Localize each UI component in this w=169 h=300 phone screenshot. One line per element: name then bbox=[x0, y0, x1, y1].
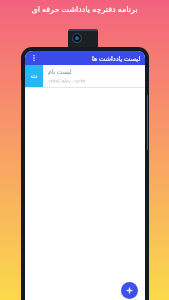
button[interactable]: Add note bbox=[121, 282, 138, 299]
staticText: ۱۳۹۹/۰۷/۲۲ - ۱۲:۳۴ bbox=[48, 78, 86, 84]
staticText: برنامه دفترچه یادداشت حرفه ای bbox=[31, 3, 138, 14]
staticText: ت bbox=[31, 72, 38, 80]
staticText: لیست یادداشت ها bbox=[92, 54, 141, 63]
staticText: لیست نام bbox=[48, 68, 72, 76]
button[interactable]: More options bbox=[29, 53, 39, 63]
button[interactable]: ت bbox=[25, 65, 145, 87]
